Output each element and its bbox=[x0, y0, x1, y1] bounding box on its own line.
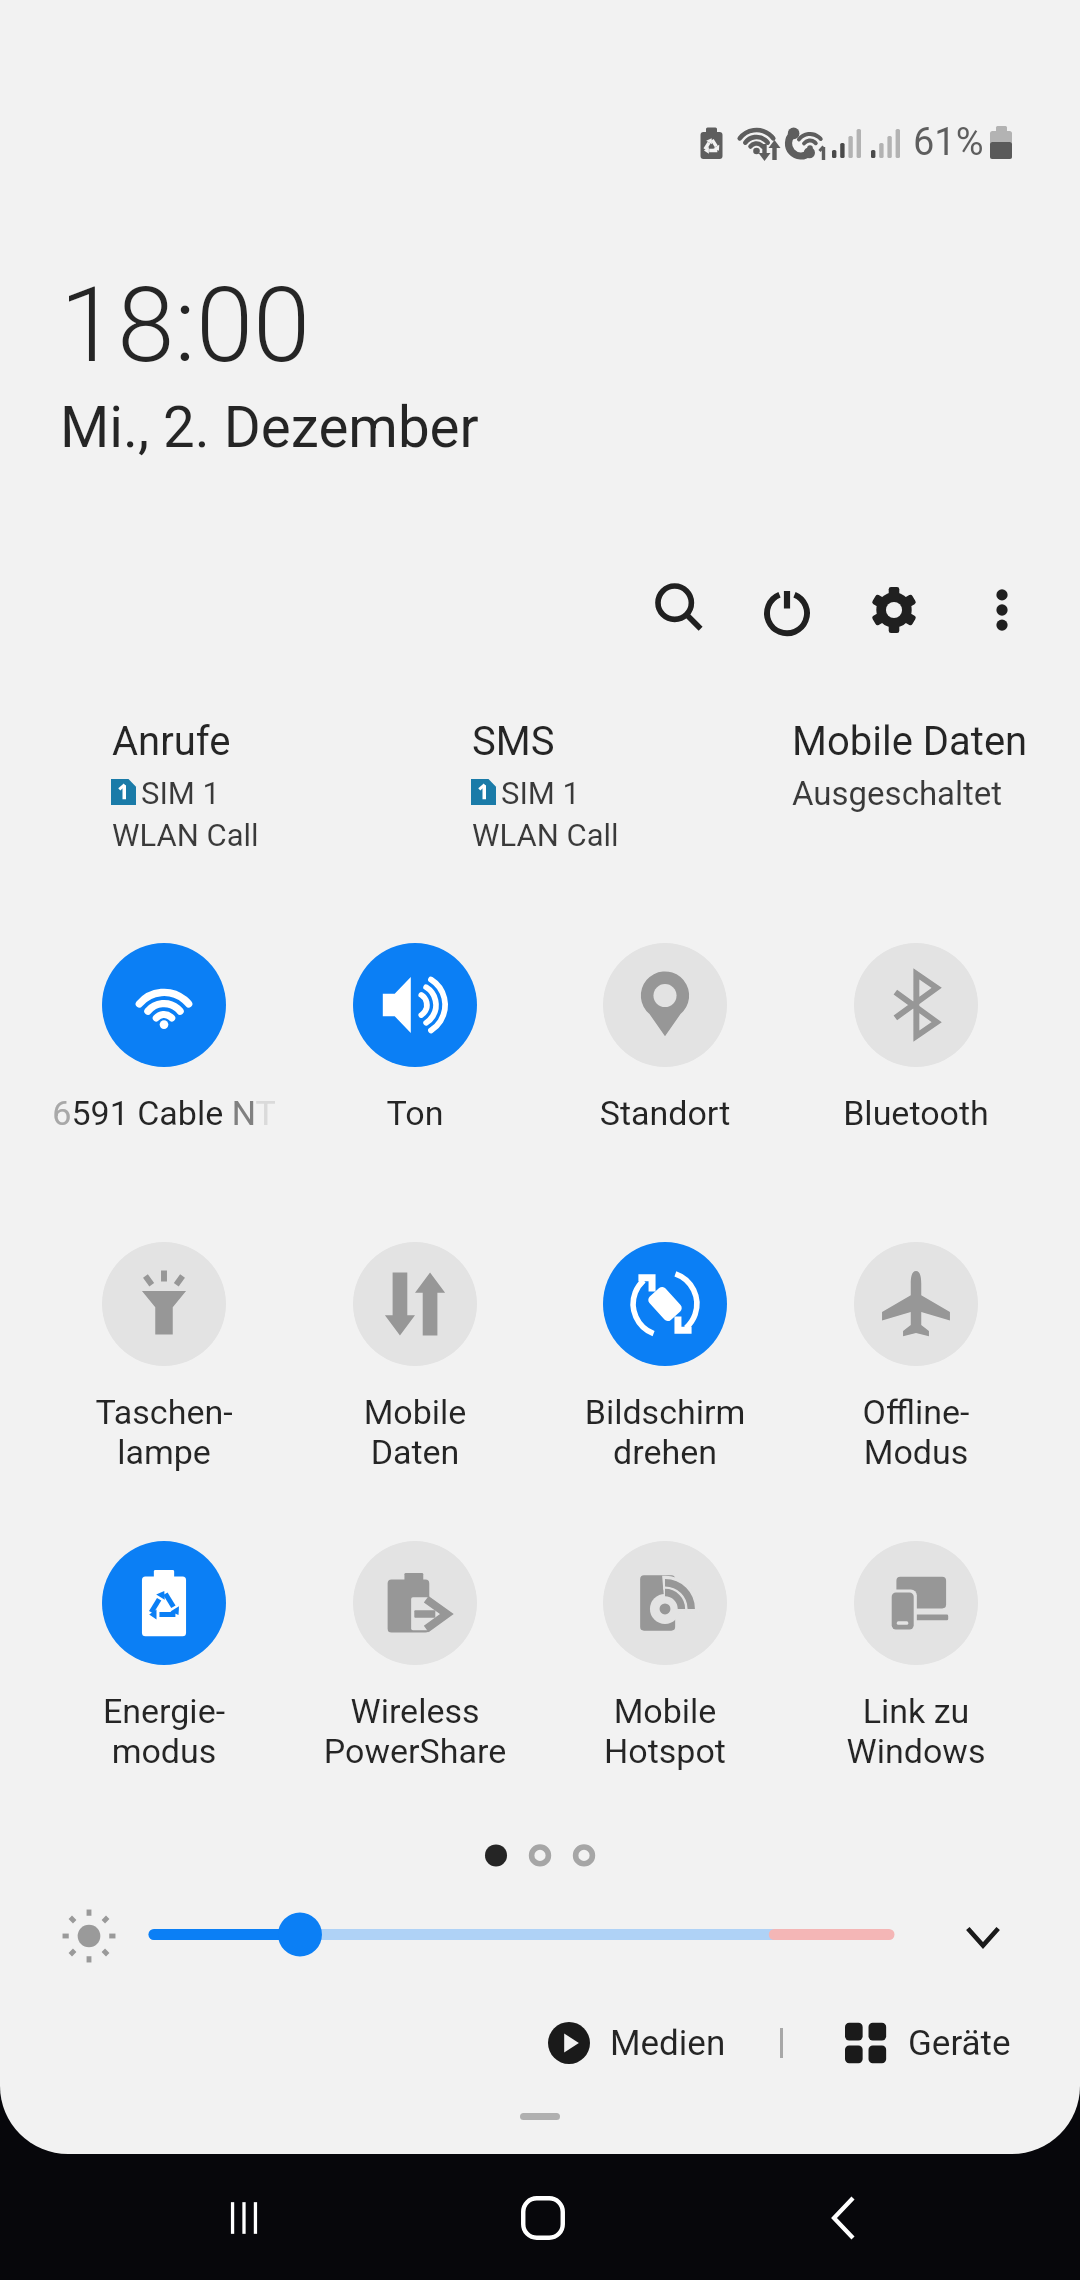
staticText: WLAN Call bbox=[472, 817, 619, 853]
button[interactable]: Wireless PowerShare bbox=[290, 1541, 540, 1781]
button[interactable]: Geräte bbox=[845, 2012, 1011, 2074]
button[interactable]: Mobile Daten bbox=[290, 1242, 540, 1482]
button[interactable]: Expand quick settings bbox=[938, 1892, 1028, 1982]
button[interactable]: Settings bbox=[839, 555, 949, 665]
staticText: Geräte bbox=[908, 2023, 1011, 2064]
staticText: Wireless PowerShare bbox=[290, 1691, 540, 1771]
staticText: SMS bbox=[472, 718, 555, 765]
button[interactable]: 6591 Cable NT bbox=[39, 943, 289, 1183]
staticText: Mobile Daten bbox=[290, 1392, 540, 1472]
staticText: Ausgeschaltet bbox=[792, 774, 1003, 813]
button[interactable]: Power off bbox=[732, 555, 842, 665]
button[interactable]: More options bbox=[947, 555, 1057, 665]
button[interactable]: Ton bbox=[290, 943, 540, 1183]
staticText: SIM 1 bbox=[141, 775, 221, 811]
staticText: Taschen- lampe bbox=[39, 1392, 289, 1472]
button[interactable]: Home bbox=[483, 2158, 603, 2278]
button[interactable]: Bluetooth bbox=[791, 943, 1041, 1183]
staticText: Anrufe bbox=[112, 718, 231, 765]
button[interactable]: Mobile Hotspot bbox=[540, 1541, 790, 1781]
staticText: Mobile Hotspot bbox=[540, 1691, 790, 1771]
button[interactable]: Recent apps bbox=[184, 2158, 304, 2278]
staticText: Mobile Daten bbox=[792, 718, 1028, 765]
staticText: Energie- modus bbox=[39, 1691, 289, 1771]
button[interactable]: Energie- modus bbox=[39, 1541, 289, 1781]
staticText: Standort bbox=[540, 1093, 790, 1133]
staticText: Bluetooth bbox=[791, 1093, 1041, 1133]
staticText: 18:00 bbox=[60, 265, 311, 386]
staticText: Medien bbox=[610, 2023, 726, 2064]
button[interactable]: Taschen- lampe bbox=[39, 1242, 289, 1482]
staticText: 61% bbox=[913, 120, 984, 165]
button[interactable]: Back bbox=[784, 2158, 904, 2278]
button[interactable]: Offline- Modus bbox=[791, 1242, 1041, 1482]
button[interactable]: Medien bbox=[548, 2012, 726, 2074]
staticText: SIM 1 bbox=[501, 775, 581, 811]
button[interactable]: Link zu Windows bbox=[791, 1541, 1041, 1781]
staticText: Mi., 2. Dezember bbox=[60, 395, 479, 461]
button[interactable]: Bildschirm drehen bbox=[540, 1242, 790, 1482]
staticText: Offline- Modus bbox=[791, 1392, 1041, 1472]
button[interactable]: Search bbox=[624, 553, 734, 663]
button[interactable]: Standort bbox=[540, 943, 790, 1183]
staticText: Bildschirm drehen bbox=[540, 1392, 790, 1472]
staticText: Link zu Windows bbox=[791, 1691, 1041, 1771]
staticText: WLAN Call bbox=[112, 817, 259, 853]
staticText: 6591 Cable NT bbox=[39, 1093, 289, 1133]
staticText: Ton bbox=[290, 1093, 540, 1133]
